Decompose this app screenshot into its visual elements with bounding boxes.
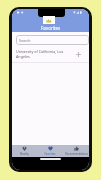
staticText: University of California, Los Angeles	[16, 49, 64, 59]
button[interactable]: Nearby	[12, 145, 37, 157]
staticText: Favorites	[41, 25, 61, 31]
button[interactable]: Recommendations	[63, 145, 89, 157]
staticText: Favorites	[44, 152, 56, 156]
button[interactable]: Favorites	[12, 23, 89, 32]
button[interactable]: Favorites	[37, 145, 63, 157]
button[interactable]: University of California, Los Angeles	[12, 45, 89, 62]
staticText: Recommendations	[65, 152, 88, 156]
button[interactable]: Add to favorites	[74, 50, 82, 58]
button[interactable]: Search	[16, 35, 89, 45]
staticText: Nearby	[20, 152, 29, 156]
staticText: Search	[19, 38, 31, 43]
